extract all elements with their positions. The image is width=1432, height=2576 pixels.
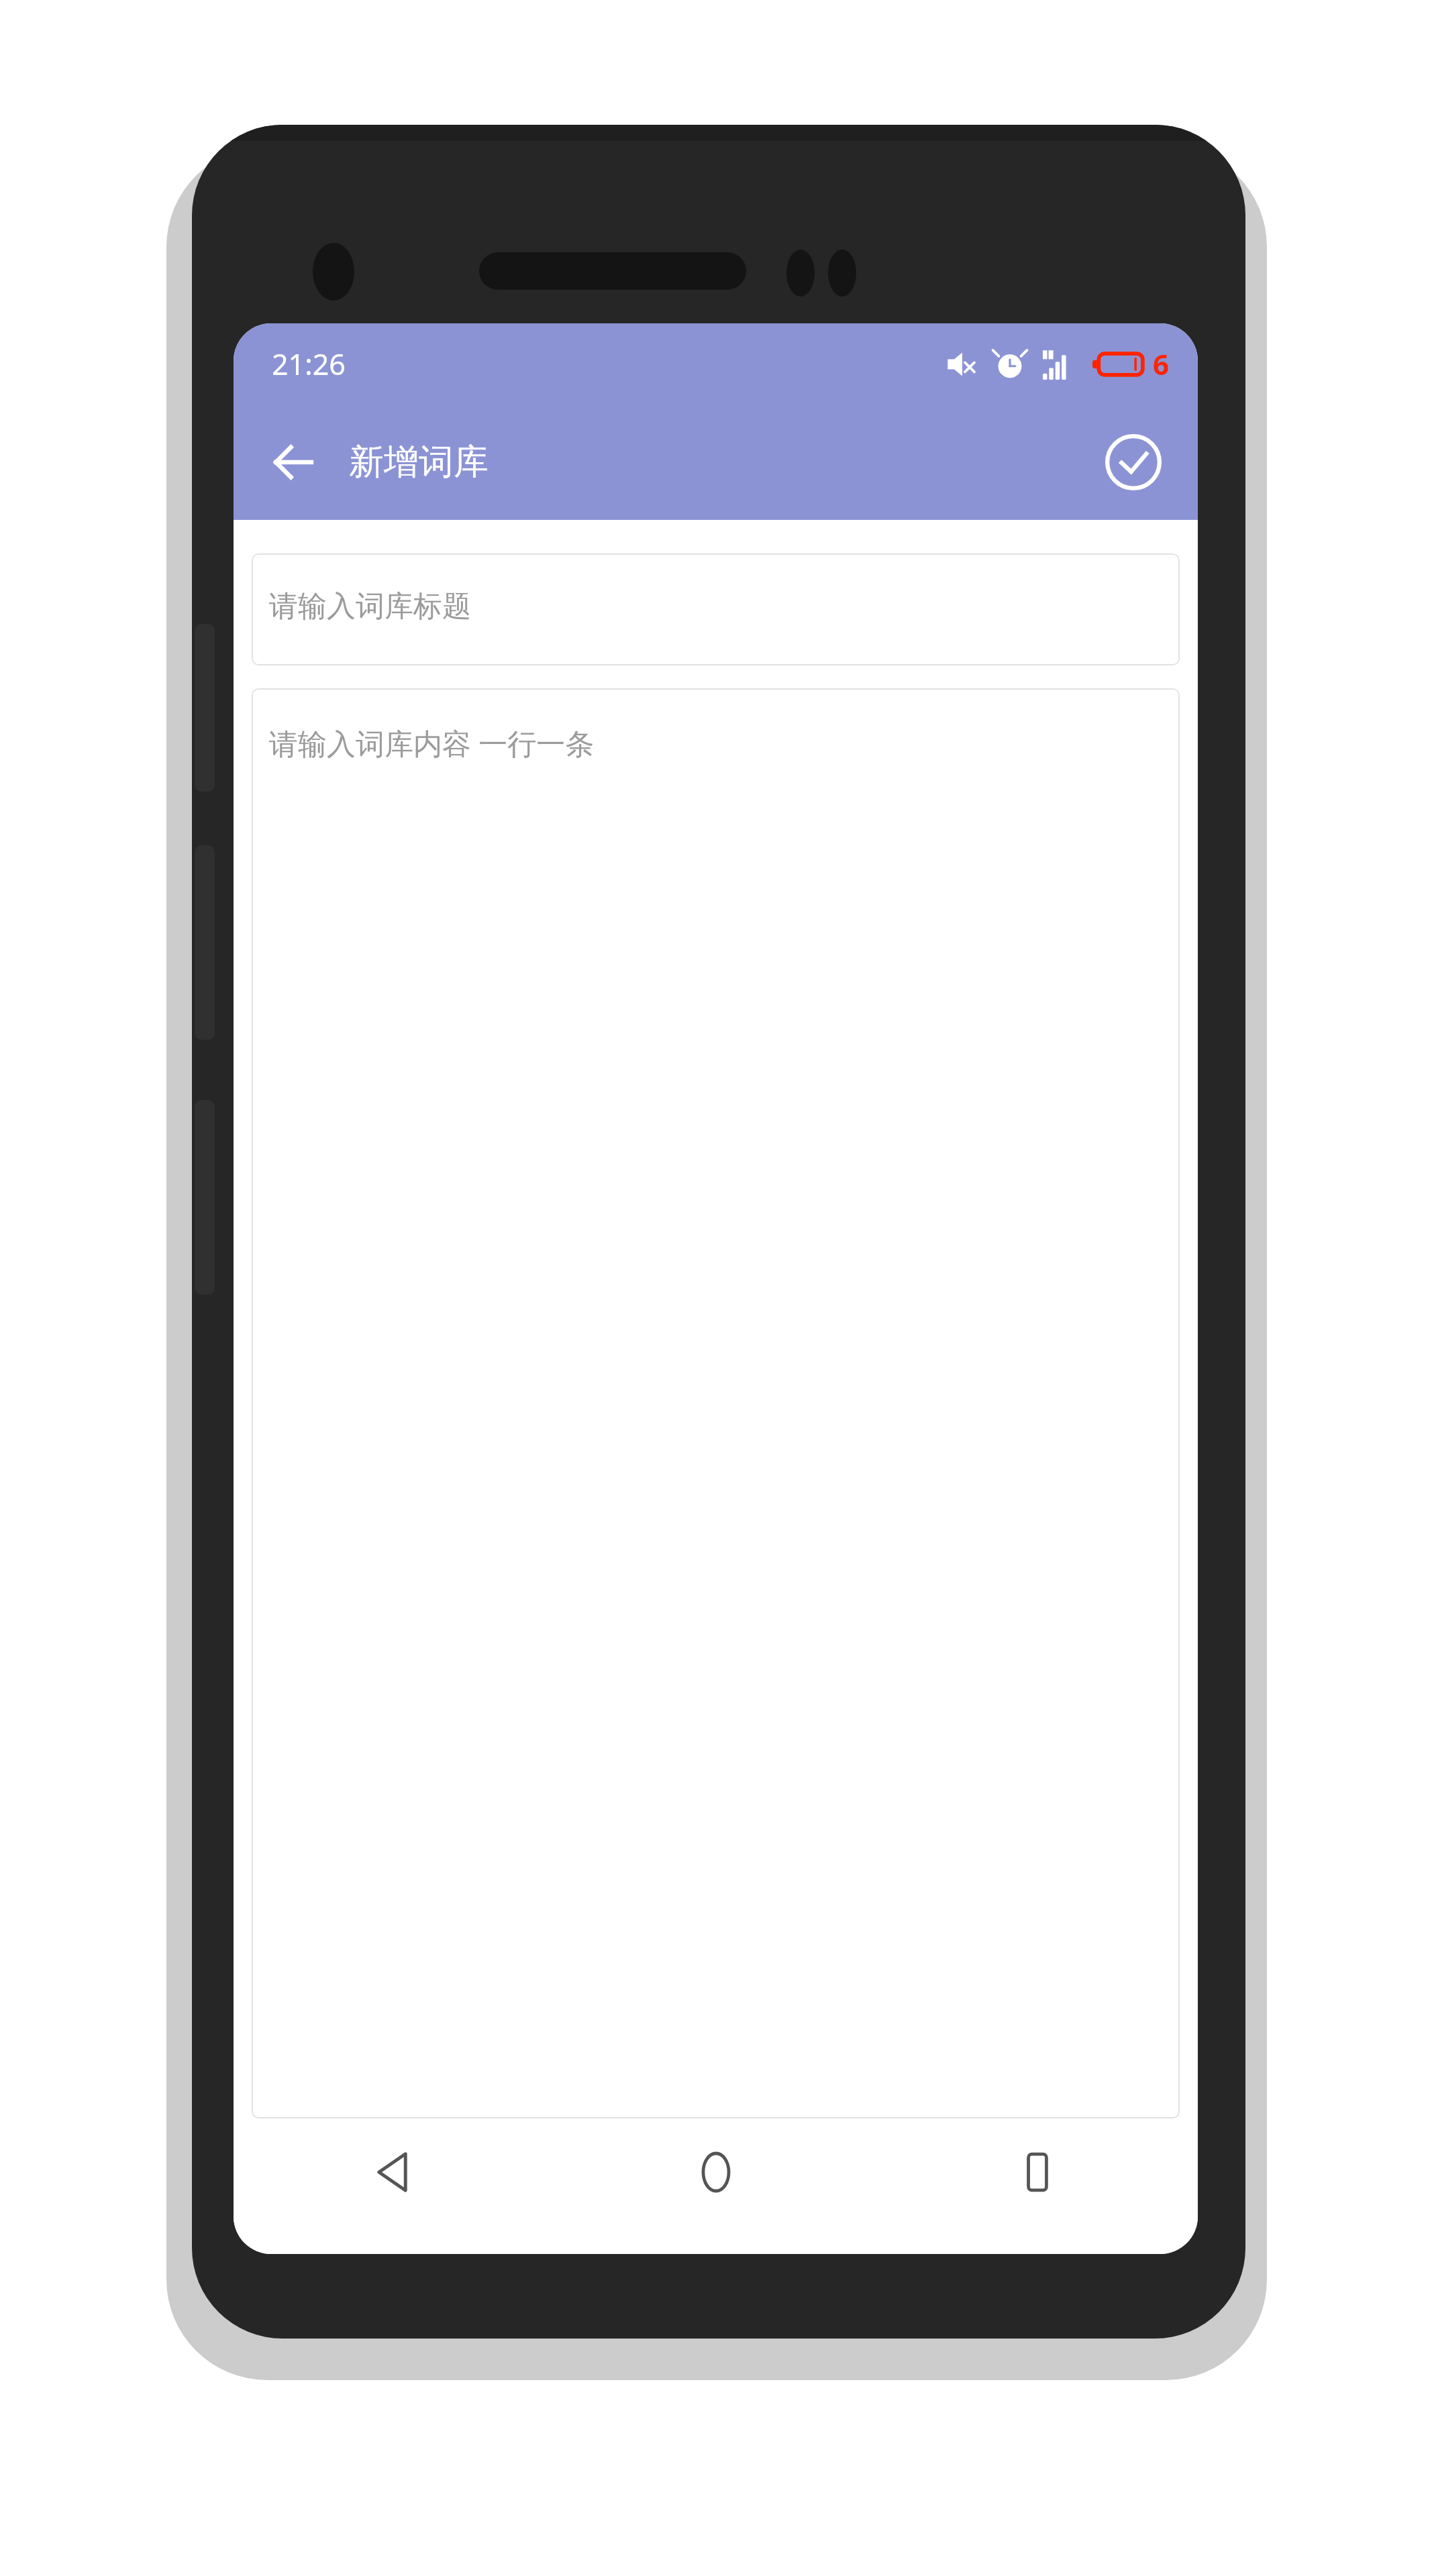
staticText: 请输入词库标题	[269, 588, 471, 625]
button[interactable]: Back	[252, 422, 333, 502]
button[interactable]: 请输入词库标题	[252, 553, 1180, 665]
staticText: 6	[1153, 345, 1170, 383]
staticText: 请输入词库内容 一行一条	[269, 723, 595, 763]
staticText: 新增词库	[349, 440, 489, 484]
button[interactable]: 请输入词库内容 一行一条	[252, 688, 1180, 2118]
button[interactable]: Recents	[876, 2120, 1198, 2254]
button[interactable]: Home	[555, 2120, 876, 2254]
button[interactable]: Back	[234, 2120, 555, 2254]
button[interactable]: Confirm	[1093, 422, 1174, 502]
staticText: 21:26	[272, 344, 346, 384]
